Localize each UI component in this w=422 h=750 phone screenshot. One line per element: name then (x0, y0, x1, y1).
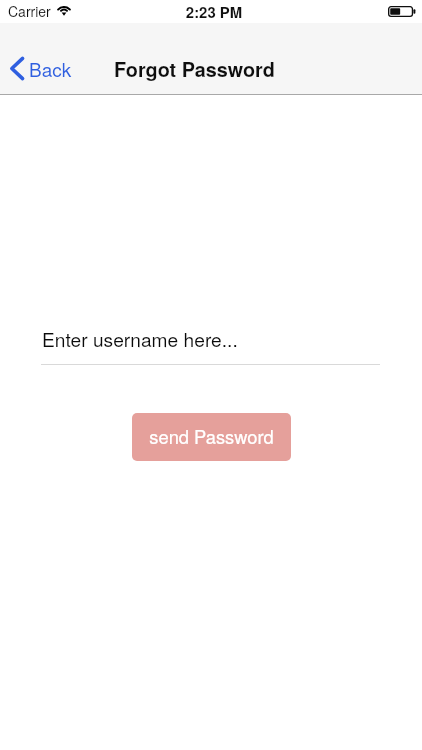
staticText: Back (29, 55, 72, 82)
staticText: 2:23 PM (3, 1, 422, 22)
staticText: Carrier (8, 1, 51, 21)
button[interactable]: Back (5, 51, 77, 86)
staticText: Enter username here... (42, 325, 238, 352)
button[interactable]: Enter username here... (41, 325, 380, 365)
staticText: send Password (149, 423, 274, 449)
button[interactable]: send Password (132, 413, 291, 461)
other: Back (10, 57, 24, 80)
staticText: Forgot Password (114, 55, 275, 83)
